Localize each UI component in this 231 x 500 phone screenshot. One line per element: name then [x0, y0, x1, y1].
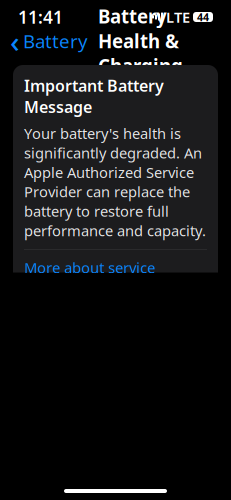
staticText: LTE	[166, 7, 190, 27]
button[interactable]: Peak Performance Capability	[13, 471, 218, 500]
staticText: More about service options...	[24, 258, 155, 297]
staticText: ‹	[10, 21, 20, 60]
staticText: 11:41	[18, 5, 63, 28]
button[interactable]: More about service options...	[24, 258, 207, 297]
staticText: Peak Performance Capability	[24, 466, 165, 500]
staticText: Battery Health & Charging	[98, 4, 183, 78]
staticText: 44	[197, 10, 209, 24]
button[interactable]: ‹	[10, 21, 88, 60]
staticText: Your battery's health is significantly d…	[24, 123, 206, 240]
staticText: Battery	[23, 29, 88, 53]
staticText: Important Battery Message	[24, 75, 164, 117]
